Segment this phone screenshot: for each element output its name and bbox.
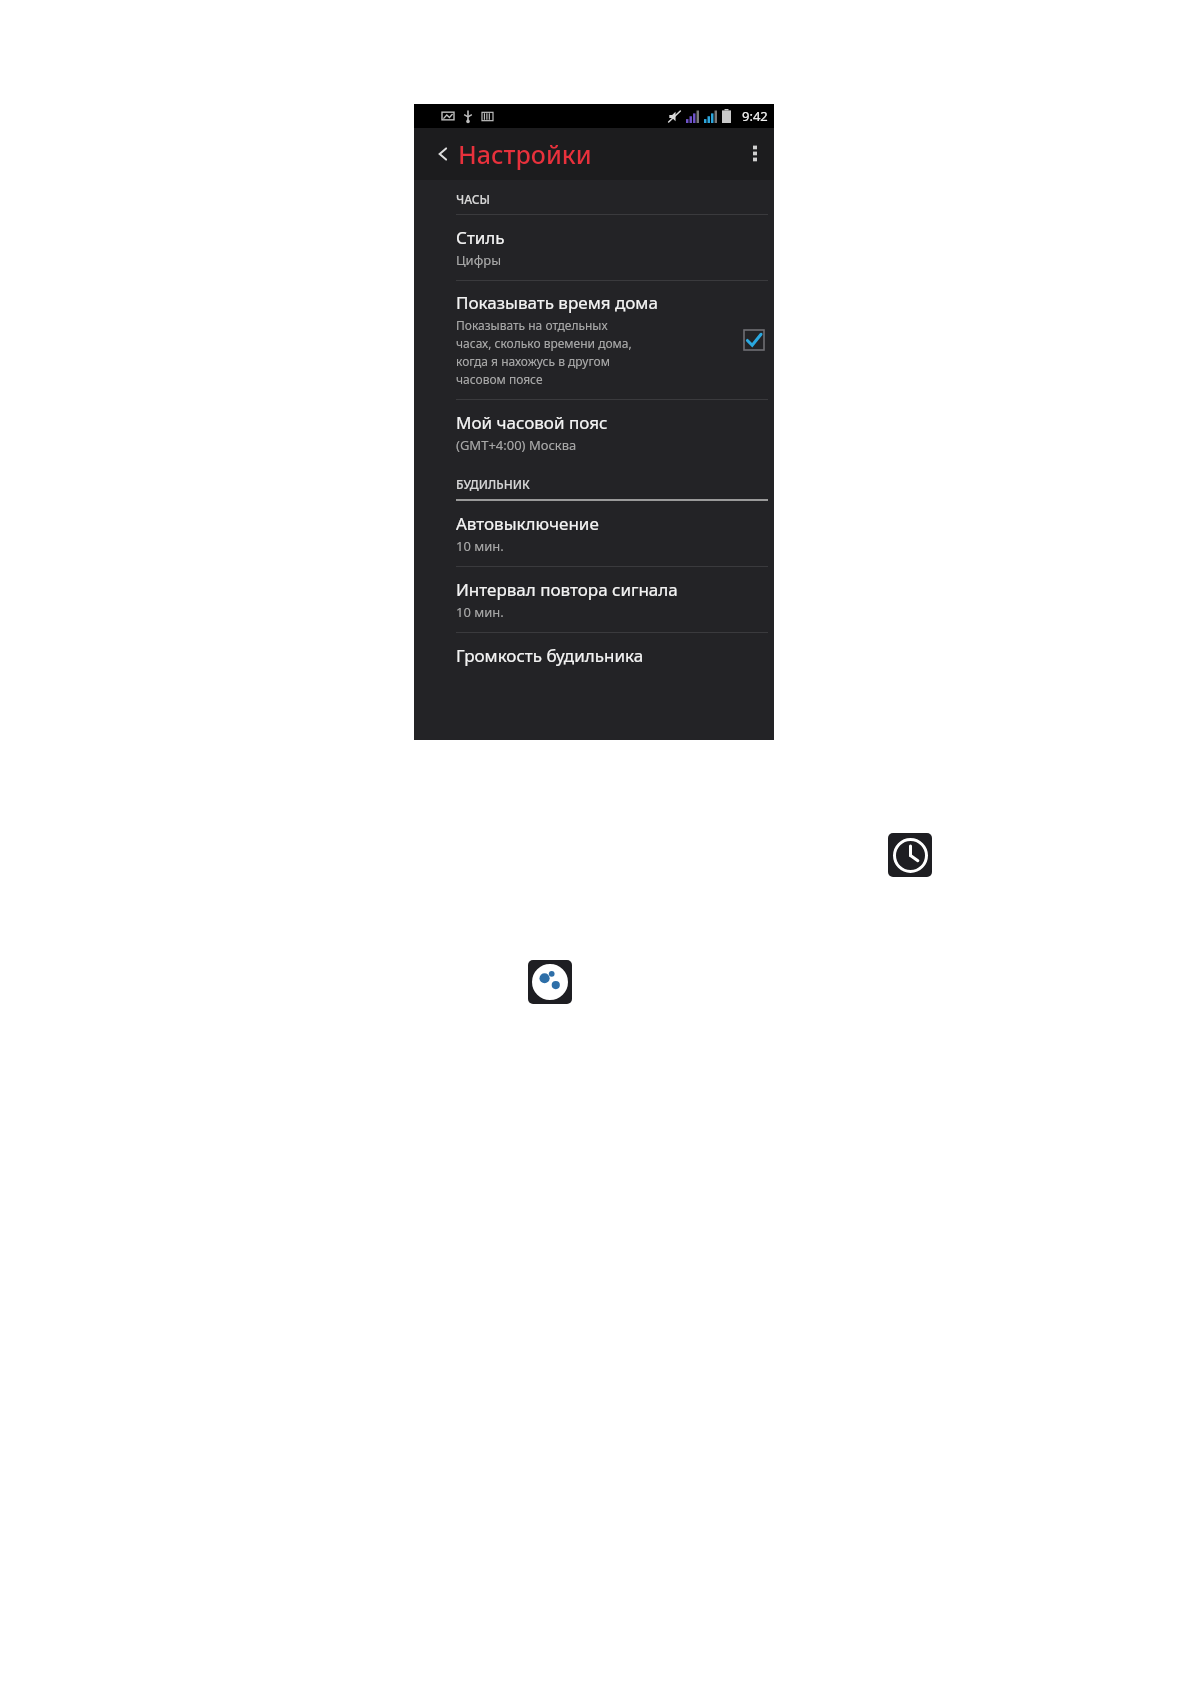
staticText: часовом поясе bbox=[456, 371, 543, 387]
staticText: 10 мин. bbox=[456, 537, 504, 555]
staticText: Настройки bbox=[458, 137, 592, 171]
staticText: часах, сколько времени дома, bbox=[456, 335, 632, 351]
button[interactable]: Автовыключение bbox=[440, 501, 774, 566]
staticText: Стиль bbox=[456, 226, 505, 249]
staticText: ЧАСЫ bbox=[456, 191, 490, 207]
staticText: Показывать на отдельных bbox=[456, 317, 608, 333]
button[interactable]: Показывать время дома bbox=[440, 281, 774, 399]
staticText: Интервал повтора сигнала bbox=[456, 578, 678, 601]
button[interactable]: Показывать время дома bbox=[742, 328, 766, 352]
button[interactable]: Громкость будильника bbox=[440, 633, 774, 678]
staticText: БУДИЛЬНИК bbox=[456, 476, 530, 492]
staticText: (GMT+4:00) Москва bbox=[456, 436, 577, 454]
staticText: Показывать время дома bbox=[456, 291, 658, 314]
staticText: когда я нахожусь в другом bbox=[456, 353, 610, 369]
staticText: 9:42 bbox=[742, 107, 768, 125]
button[interactable]: Мой часовой пояс bbox=[440, 400, 774, 465]
other: Назад bbox=[436, 147, 450, 161]
staticText: 10 мин. bbox=[456, 603, 504, 621]
button[interactable]: Назад bbox=[436, 137, 592, 171]
staticText: Цифры bbox=[456, 251, 502, 269]
staticText: Автовыключение bbox=[456, 512, 599, 535]
staticText: Мой часовой пояс bbox=[456, 411, 608, 434]
button[interactable]: Интервал повтора сигнала bbox=[440, 567, 774, 632]
button[interactable]: Браузер bbox=[528, 960, 572, 1004]
button[interactable]: Стиль bbox=[440, 215, 774, 280]
button[interactable]: Часы bbox=[888, 833, 932, 877]
staticText: Громкость будильника bbox=[456, 644, 644, 667]
button[interactable]: Меню bbox=[736, 128, 774, 180]
